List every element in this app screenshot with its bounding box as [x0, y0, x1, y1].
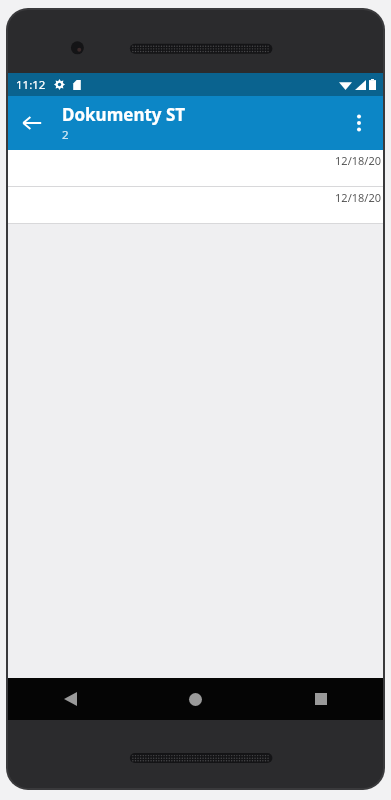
staticText: 12/18/20	[335, 190, 381, 205]
button[interactable]: Recent apps	[258, 678, 383, 720]
staticText: 11:12	[16, 77, 46, 93]
button[interactable]: Home	[133, 678, 258, 720]
button[interactable]: 2020/stAS/ST/000019	[8, 187, 383, 223]
staticText: Dokumenty ST	[62, 103, 186, 126]
staticText: 2	[62, 127, 69, 143]
button[interactable]: More options	[335, 99, 383, 147]
button[interactable]: Back	[8, 99, 56, 147]
button[interactable]: Back	[8, 678, 133, 720]
staticText: 12/18/20	[335, 153, 381, 168]
button[interactable]: 2020/stAS/ST/000020	[8, 150, 383, 186]
